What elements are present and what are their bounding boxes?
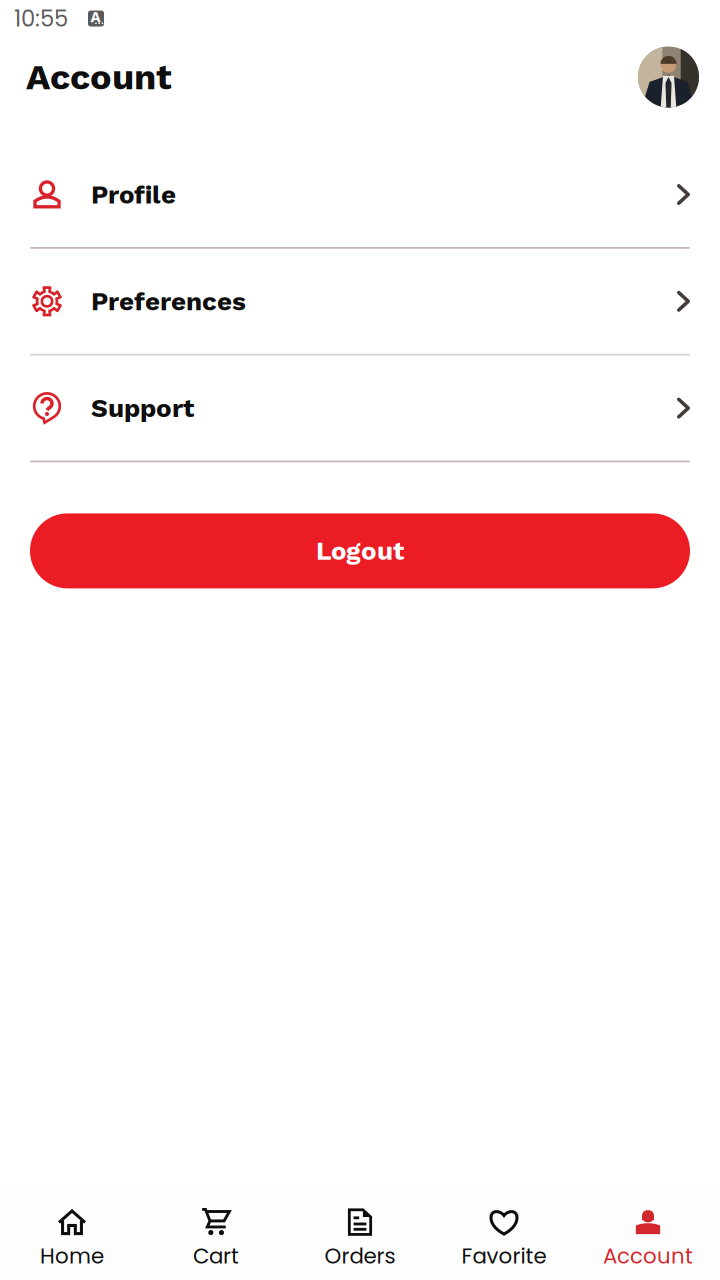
staticText: 10:55 — [14, 3, 68, 34]
staticText: Account — [603, 1241, 693, 1271]
button[interactable]: Orders — [288, 1190, 432, 1280]
staticText: Home — [40, 1241, 104, 1271]
button[interactable]: Support — [0, 356, 720, 461]
button[interactable]: Profile — [0, 142, 720, 247]
staticText: Favorite — [461, 1241, 546, 1271]
button[interactable]: Logout — [30, 513, 690, 588]
button[interactable]: Home — [0, 1190, 144, 1280]
staticText: A — [90, 8, 100, 26]
staticText: Support — [91, 393, 194, 423]
staticText: Logout — [316, 536, 404, 566]
button[interactable]: Profile photo — [638, 46, 699, 107]
button[interactable]: Account — [576, 1190, 720, 1280]
button[interactable]: Cart — [144, 1190, 288, 1280]
staticText: Profile — [91, 179, 176, 210]
button[interactable]: Preferences — [0, 249, 720, 354]
button[interactable]: Favorite — [432, 1190, 576, 1280]
staticText: Preferences — [91, 286, 246, 317]
staticText: Account — [26, 56, 172, 98]
staticText: Cart — [193, 1241, 239, 1271]
staticText: Orders — [324, 1241, 395, 1271]
